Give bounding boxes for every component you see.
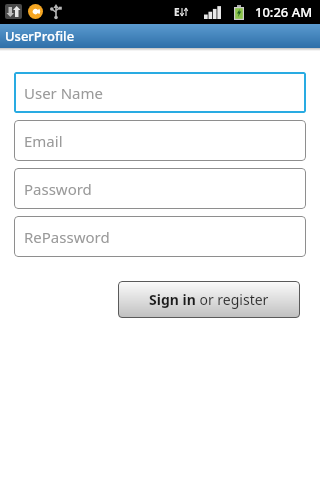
staticText: RePassword: [24, 227, 110, 247]
button[interactable]: User Name: [14, 72, 306, 113]
staticText: User Name: [24, 83, 104, 103]
staticText: UserProfile: [5, 27, 75, 45]
button[interactable]: RePassword: [14, 216, 306, 257]
staticText: Email: [24, 131, 63, 151]
staticText: 10:26 AM: [255, 3, 313, 21]
staticText: Password: [24, 179, 92, 199]
button[interactable]: Sign in or register: [118, 281, 300, 318]
staticText: E: [174, 5, 180, 19]
button[interactable]: Password: [14, 168, 306, 209]
button[interactable]: Email: [14, 120, 306, 161]
staticText: Sign in or register: [149, 290, 269, 309]
